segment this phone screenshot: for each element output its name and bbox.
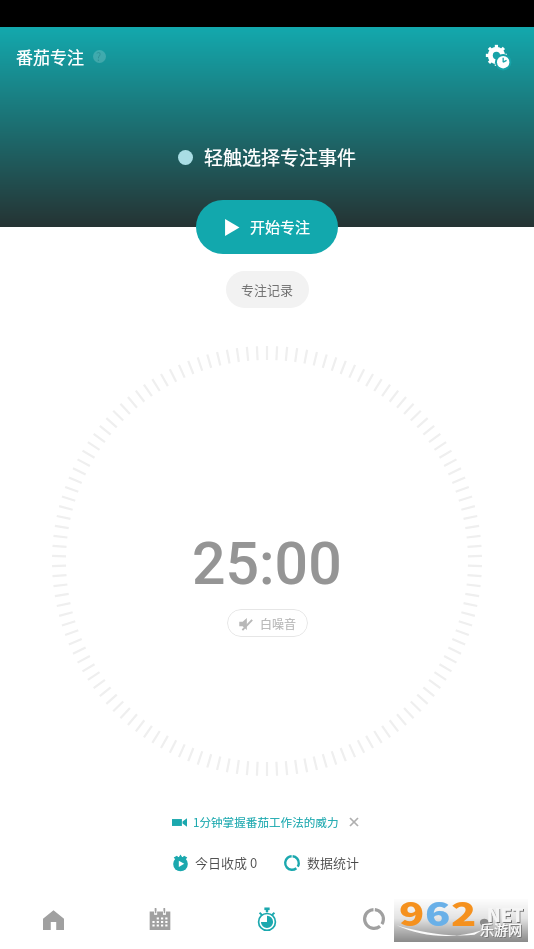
staticText: 1分钟掌握番茄工作法的威力	[193, 814, 339, 831]
button[interactable]: Profile	[427, 889, 534, 949]
staticText: 专注记录	[241, 280, 294, 299]
button[interactable]: Home	[0, 889, 106, 949]
staticText: 今日收成 0	[195, 853, 258, 872]
staticText: 轻触选择专注事件	[204, 143, 357, 171]
staticText: NET	[488, 902, 525, 928]
button[interactable]: 开始专注	[196, 200, 338, 254]
staticText: 9	[399, 888, 425, 932]
staticText: 6	[425, 888, 451, 932]
button[interactable]: Calendar	[106, 889, 213, 949]
staticText: .	[477, 888, 493, 932]
button[interactable]: 1分钟掌握番茄工作法的威力	[172, 814, 339, 831]
button[interactable]: Close	[344, 812, 364, 832]
staticText: NET	[487, 901, 524, 927]
button[interactable]: 白噪音	[227, 609, 308, 637]
staticText: 2	[451, 888, 477, 932]
staticText: ?	[96, 48, 102, 64]
staticText: 乐游网	[480, 919, 522, 939]
staticText: 番茄专注	[16, 44, 84, 69]
staticText: 白噪音	[260, 615, 297, 632]
staticText: 25:00	[192, 529, 342, 598]
button[interactable]: Statistics	[320, 889, 427, 949]
button[interactable]: Settings	[475, 34, 519, 78]
staticText: 数据统计	[307, 853, 360, 872]
button[interactable]: 轻触选择专注事件	[174, 139, 361, 175]
button[interactable]: Focus timer	[213, 889, 320, 949]
button[interactable]: 数据统计	[284, 853, 360, 872]
button[interactable]: Help	[91, 48, 107, 64]
button[interactable]: 今日收成 0	[172, 853, 258, 872]
button[interactable]: 专注记录	[226, 271, 309, 308]
staticText: 开始专注	[250, 216, 311, 238]
staticText: 乐游网	[481, 920, 523, 940]
